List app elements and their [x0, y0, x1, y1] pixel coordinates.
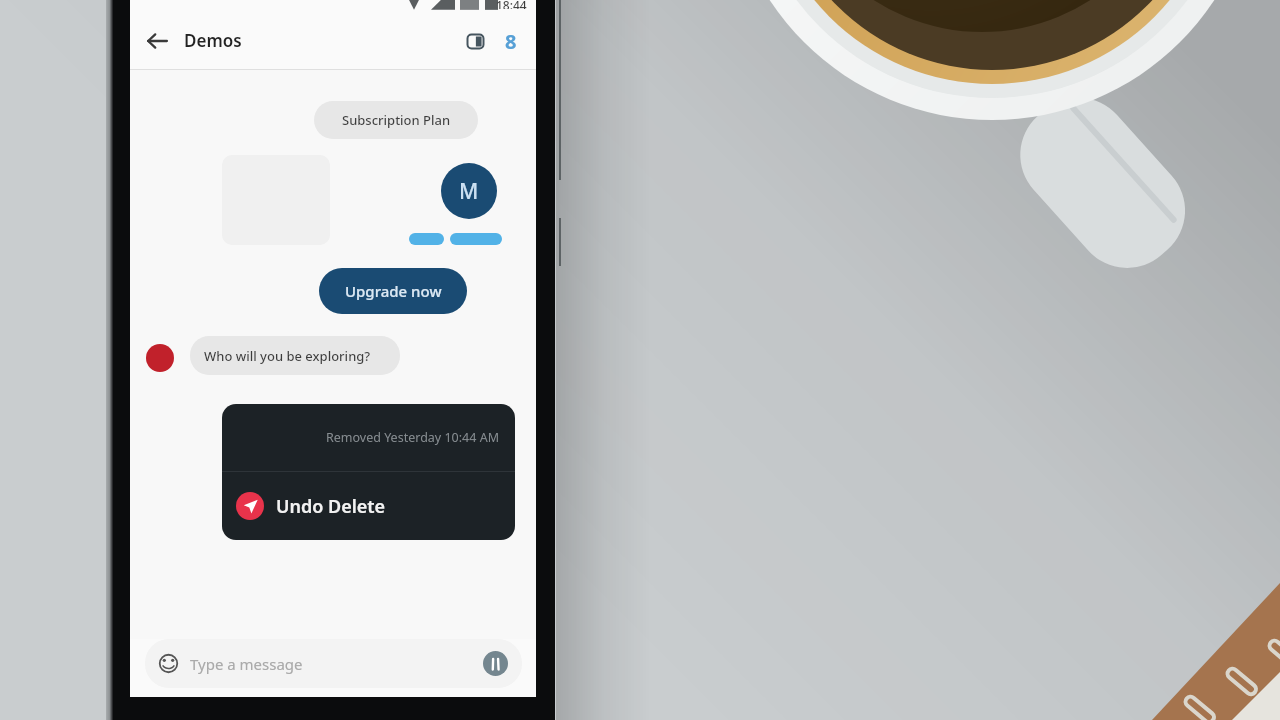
- staticText: Type a message: [190, 654, 303, 674]
- button[interactable]: Type a message: [145, 639, 522, 688]
- button[interactable]: Upgrade now: [319, 268, 467, 314]
- staticText: Upgrade now: [345, 281, 442, 301]
- button[interactable]: Attach: [483, 651, 508, 676]
- staticText: Who will you be exploring?: [204, 347, 371, 365]
- staticText: Demos: [184, 29, 242, 52]
- staticText: Removed Yesterday 10:44 AM: [326, 429, 499, 446]
- button[interactable]: Who will you be exploring?: [190, 336, 400, 375]
- button[interactable]: Back: [138, 22, 176, 60]
- button[interactable]: Split view: [458, 24, 492, 58]
- button[interactable]: Contact avatar: [146, 344, 174, 372]
- staticText: Subscription Plan: [342, 111, 451, 129]
- button[interactable]: Subscription Plan: [314, 101, 478, 139]
- staticText: 8: [505, 28, 517, 55]
- staticText: Undo Delete: [276, 494, 386, 519]
- button[interactable]: M: [441, 163, 497, 219]
- staticText: 18:44: [496, 0, 527, 9]
- button[interactable]: Removed Yesterday 10:44 AM: [222, 404, 515, 540]
- button[interactable]: Profile: [494, 24, 528, 58]
- staticText: M: [459, 177, 479, 206]
